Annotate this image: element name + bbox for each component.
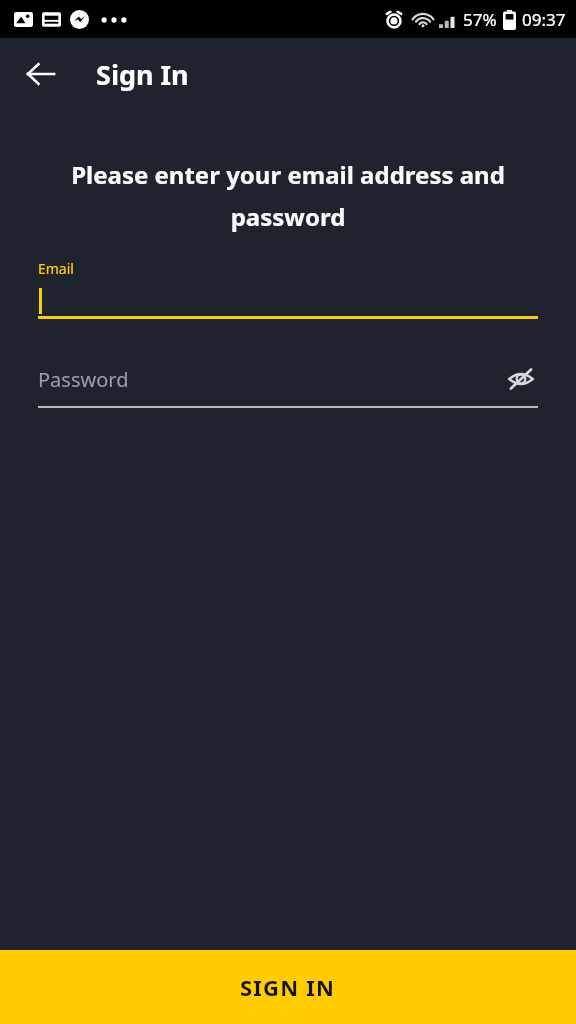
staticText: Please enter your email address and pass… (36, 158, 540, 233)
staticText: Sign In (96, 56, 189, 93)
staticText: 09:37 (522, 8, 566, 31)
staticText: Password (38, 366, 129, 393)
button[interactable]: Email (38, 259, 538, 319)
staticText: Email (38, 259, 74, 278)
button[interactable]: Show password (504, 362, 538, 396)
button[interactable]: Password (38, 362, 538, 396)
staticText: 57% (463, 8, 497, 31)
button[interactable]: SIGN IN (0, 950, 576, 1024)
staticText: SIGN IN (240, 972, 336, 1002)
button[interactable]: Back (16, 50, 64, 98)
